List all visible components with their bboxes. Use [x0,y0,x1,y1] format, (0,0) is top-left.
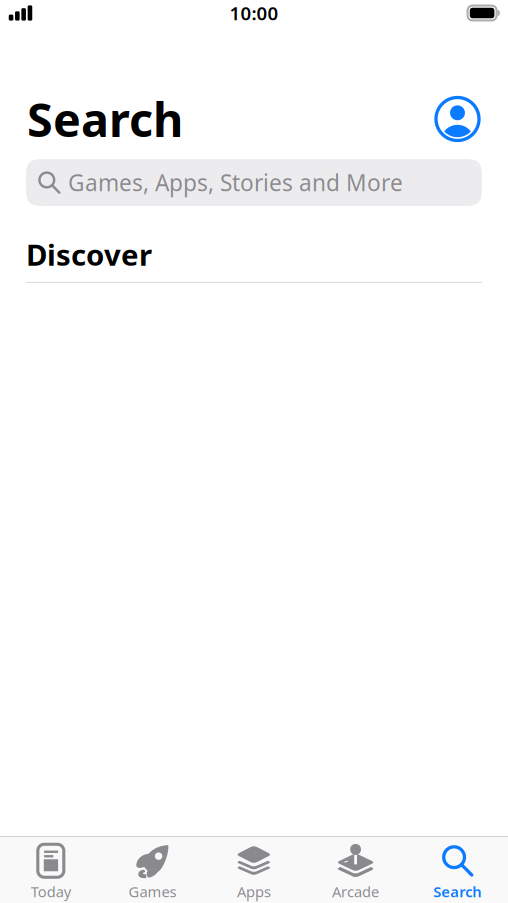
staticText: Search [27,88,183,150]
button[interactable]: Games [102,835,203,903]
staticText: Today [31,882,71,901]
staticText: 10:00 [229,1,278,25]
button[interactable]: Search [406,835,508,903]
button[interactable]: Apps [203,835,305,903]
button[interactable]: Today [0,835,102,903]
staticText: Discover [26,235,152,274]
button[interactable]: Arcade [305,835,406,903]
staticText: Games, Apps, Stories and More [68,167,403,197]
button[interactable]: Account [436,97,479,140]
staticText: Search [433,882,481,901]
staticText: Apps [237,882,271,901]
button[interactable]: Games, Apps, Stories and More [26,159,482,206]
staticText: Arcade [332,882,379,901]
staticText: Games [128,882,176,901]
